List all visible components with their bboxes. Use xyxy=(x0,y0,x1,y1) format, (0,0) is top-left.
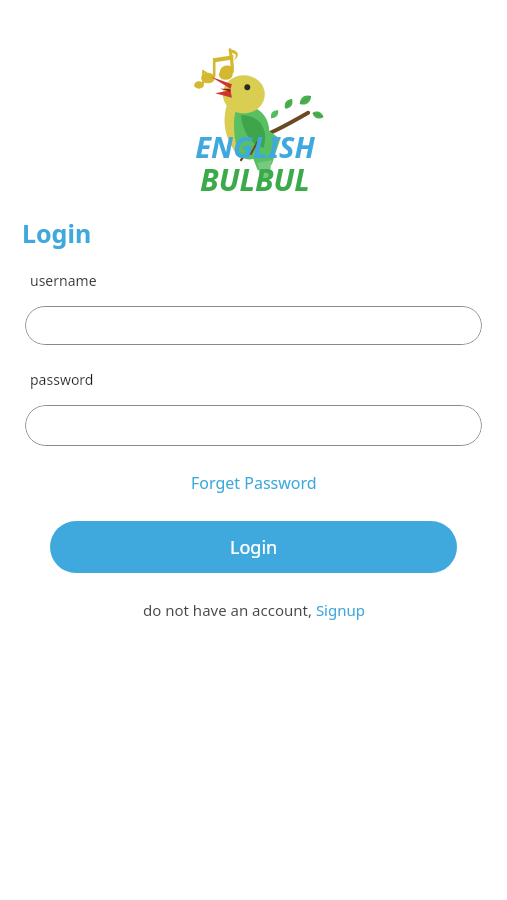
staticText: username xyxy=(30,271,97,290)
staticText: ENGLISH xyxy=(195,127,315,166)
staticText: Forget Password xyxy=(191,472,317,494)
staticText: BULBUL xyxy=(200,159,310,200)
staticText: Login xyxy=(22,216,92,250)
button[interactable]: Forget Password xyxy=(185,470,323,496)
staticText: Login xyxy=(230,535,278,560)
button[interactable]: do not have an account, Signup xyxy=(139,598,369,622)
button[interactable] xyxy=(25,306,482,345)
button[interactable] xyxy=(25,405,482,446)
staticText: do not have an account, Signup xyxy=(143,600,365,620)
button[interactable]: Login xyxy=(50,521,457,573)
staticText: password xyxy=(30,370,94,389)
